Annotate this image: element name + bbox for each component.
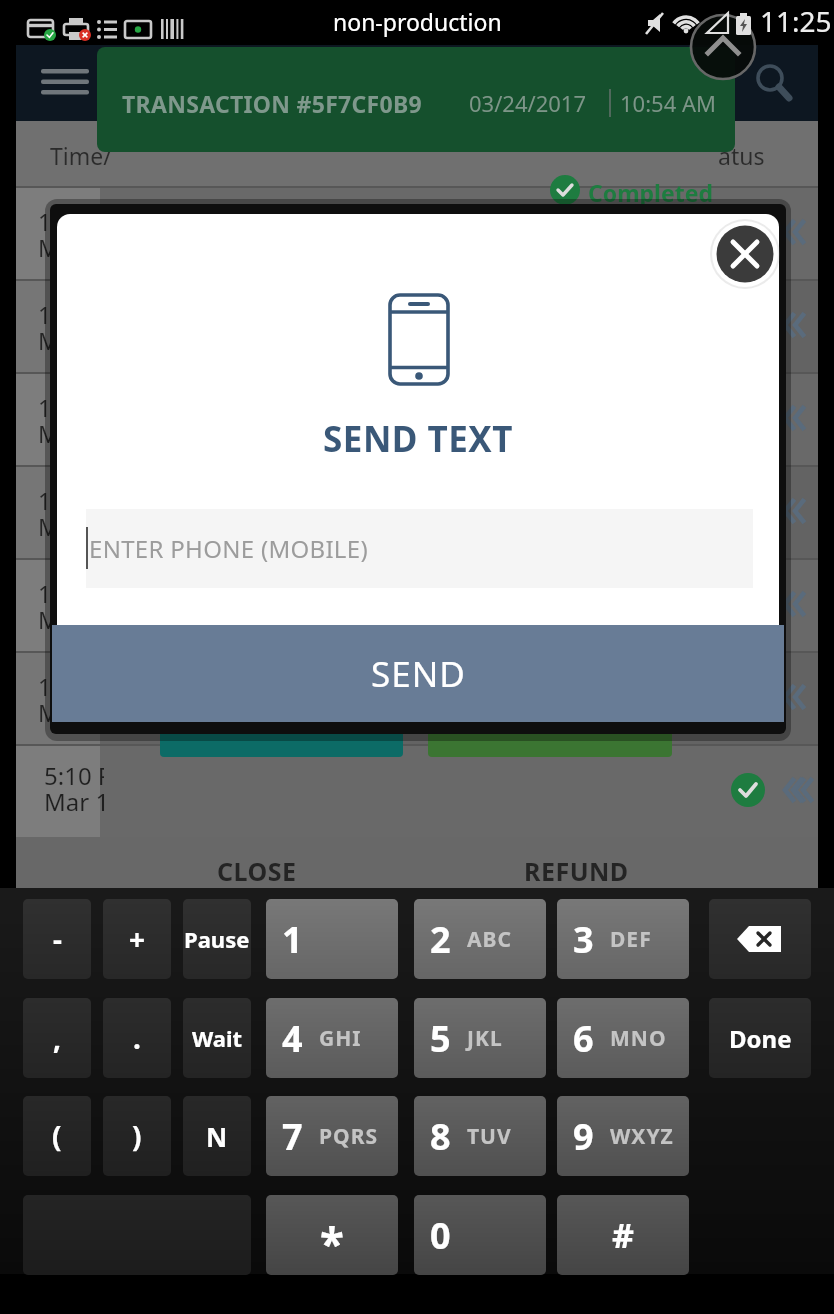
- button[interactable]: ): [103, 1096, 171, 1176]
- staticText: 8: [430, 1112, 451, 1161]
- button[interactable]: 4: [266, 998, 398, 1078]
- staticText: non-production: [333, 6, 502, 37]
- staticText: MNO: [610, 1024, 667, 1053]
- staticText: 4: [282, 1014, 303, 1063]
- staticText: Time/: [50, 140, 112, 171]
- button[interactable]: 8: [414, 1096, 546, 1176]
- staticText: SEND: [371, 650, 466, 698]
- button[interactable]: 1: [266, 899, 398, 979]
- staticText: ,: [53, 1019, 61, 1057]
- staticText: 3: [573, 915, 594, 964]
- staticText: JKL: [467, 1024, 503, 1053]
- staticText: TRANSACTION #5F7CF0B9: [122, 88, 423, 119]
- button[interactable]: *: [266, 1195, 398, 1275]
- staticText: +: [129, 920, 146, 958]
- button[interactable]: 9: [557, 1096, 689, 1176]
- button[interactable]: Done: [709, 998, 811, 1078]
- staticText: #: [612, 1212, 634, 1258]
- staticText: 1: [282, 915, 303, 964]
- button[interactable]: REFUND: [506, 851, 646, 890]
- staticText: (: [52, 1117, 62, 1155]
- button[interactable]: [97, 47, 735, 152]
- button[interactable]: 0: [414, 1195, 546, 1275]
- staticText: 1:1: [38, 392, 51, 418]
- staticText: M: [38, 604, 51, 630]
- staticText: .: [133, 1019, 141, 1057]
- staticText: ENTER PHONE (MOBILE): [89, 532, 368, 565]
- staticText: M: [38, 511, 51, 537]
- button[interactable]: +: [103, 899, 171, 979]
- staticText: Done: [729, 1022, 792, 1055]
- button[interactable]: 6: [557, 998, 689, 1078]
- staticText: 5: [430, 1014, 451, 1063]
- button[interactable]: [0, 45, 834, 121]
- button[interactable]: [744, 53, 802, 111]
- button[interactable]: [709, 218, 781, 290]
- staticText: 1:1: [38, 299, 51, 325]
- staticText: SEND TEXT: [323, 415, 514, 459]
- staticText: N: [206, 1119, 228, 1154]
- button[interactable]: CLOSE: [187, 851, 327, 890]
- staticText: PQRS: [319, 1122, 378, 1151]
- staticText: Completed: [588, 177, 713, 205]
- button[interactable]: [688, 12, 758, 82]
- button[interactable]: 5: [414, 998, 546, 1078]
- staticText: REFUND: [524, 854, 629, 888]
- button[interactable]: #: [557, 1195, 689, 1275]
- button[interactable]: [30, 55, 100, 111]
- button[interactable]: SEND: [52, 625, 784, 722]
- button[interactable]: [428, 700, 672, 757]
- staticText: 1:1: [38, 485, 51, 511]
- button[interactable]: 2: [414, 899, 546, 979]
- staticText: 1:1: [38, 206, 51, 232]
- staticText: M: [38, 418, 51, 444]
- staticText: -: [53, 920, 62, 958]
- staticText: M: [38, 697, 51, 723]
- staticText: CLOSE: [217, 854, 297, 888]
- staticText: 2: [430, 915, 451, 964]
- staticText: *: [320, 1213, 344, 1273]
- staticText: 9: [573, 1112, 594, 1161]
- staticText: ): [132, 1117, 142, 1155]
- button[interactable]: .: [103, 998, 171, 1078]
- button[interactable]: 3: [557, 899, 689, 979]
- staticText: GHI: [319, 1024, 362, 1053]
- staticText: Pause: [184, 924, 250, 954]
- staticText: ABC: [467, 925, 512, 954]
- button[interactable]: -: [23, 899, 91, 979]
- button[interactable]: ENTER PHONE (MOBILE): [86, 509, 753, 588]
- staticText: DEF: [610, 925, 652, 954]
- button[interactable]: [709, 899, 811, 979]
- button[interactable]: N: [183, 1096, 251, 1176]
- button[interactable]: (: [23, 1096, 91, 1176]
- button[interactable]: ,: [23, 998, 91, 1078]
- staticText: WXYZ: [610, 1122, 674, 1151]
- staticText: M: [38, 325, 51, 351]
- staticText: 0: [430, 1211, 451, 1260]
- button[interactable]: Pause: [183, 899, 251, 979]
- staticText: 11:25: [760, 2, 832, 40]
- staticText: 6: [573, 1014, 594, 1063]
- button[interactable]: 7: [266, 1096, 398, 1176]
- staticText: 1:1: [38, 671, 51, 697]
- staticText: 03/24/2017: [469, 88, 587, 118]
- staticText: 7: [282, 1112, 303, 1161]
- staticText: TUV: [467, 1122, 512, 1151]
- staticText: atus: [718, 140, 765, 171]
- staticText: 1:1: [38, 578, 51, 604]
- staticText: 10:54 AM: [620, 88, 716, 118]
- staticText: Mar 1: [44, 785, 106, 811]
- button[interactable]: Wait: [183, 998, 251, 1078]
- staticText: Wait: [192, 1023, 243, 1053]
- staticText: M: [38, 232, 51, 258]
- staticText: 5:10 P: [44, 759, 104, 785]
- button[interactable]: [160, 700, 403, 757]
